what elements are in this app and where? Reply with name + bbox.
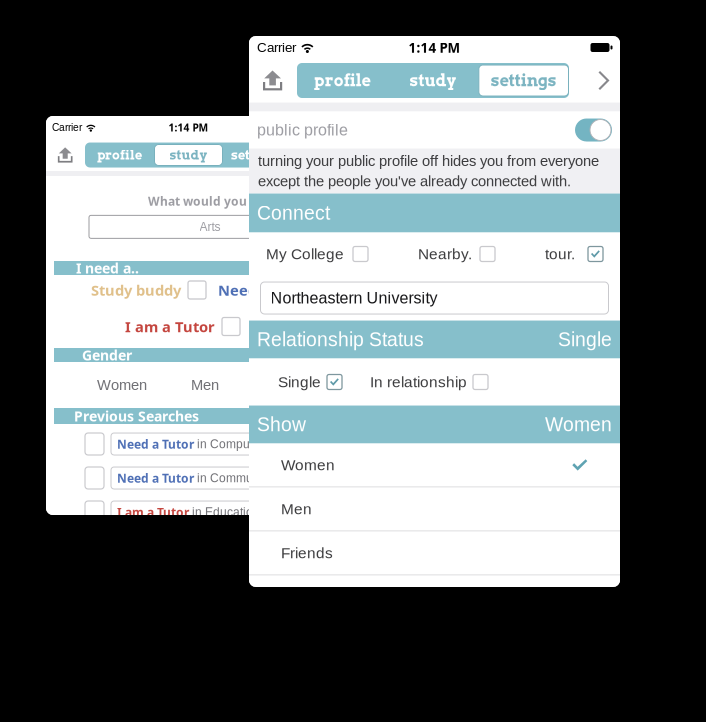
staticText: Need Tut [218, 280, 285, 300]
button[interactable]: I am a Tutor [46, 492, 331, 515]
staticText: 1:14 PM [408, 38, 460, 57]
staticText: profile [314, 71, 371, 90]
staticText: Gender [82, 345, 132, 365]
button[interactable]: Share [249, 58, 297, 102]
staticText: I need a.. [76, 258, 139, 278]
button[interactable]: settings [478, 63, 569, 98]
staticText: I am a Tutor [125, 316, 215, 336]
button[interactable]: profile [85, 142, 154, 167]
button[interactable]: Single [327, 374, 342, 389]
button[interactable]: Next [588, 58, 620, 102]
staticText: public profile [257, 121, 348, 139]
staticText: Northeastern University [270, 289, 437, 307]
button[interactable]: settings [223, 142, 292, 167]
button[interactable]: Men [249, 487, 620, 531]
button[interactable]: Study buddy [188, 281, 206, 299]
staticText: in Education [189, 505, 260, 519]
staticText: Men [281, 500, 312, 517]
staticText: Show [257, 414, 306, 435]
button[interactable]: Share [46, 139, 85, 171]
staticText: Single [278, 373, 321, 390]
button[interactable]: Friends [249, 531, 620, 575]
staticText: Nearby. [418, 245, 472, 262]
staticText: in Computer an [194, 437, 281, 451]
staticText: in Communicat [194, 471, 279, 485]
staticText: settings [231, 147, 284, 163]
button[interactable]: public profile [249, 111, 620, 148]
staticText: turning your public profile off hides yo… [258, 153, 599, 169]
staticText: Women [545, 414, 612, 435]
button[interactable]: My College [353, 246, 368, 261]
staticText: I am a Tutor [117, 504, 189, 520]
staticText: tour. [545, 245, 575, 262]
button[interactable]: Need a Tutor [46, 458, 331, 492]
button[interactable]: profile [297, 63, 388, 98]
button[interactable]: Northeastern University [260, 282, 608, 314]
button[interactable]: study [154, 142, 223, 167]
button[interactable]: In relationship [473, 374, 488, 389]
staticText: Men [191, 377, 219, 393]
staticText: Women [97, 377, 147, 393]
staticText: Relationship Status [257, 329, 424, 350]
staticText: Friends [281, 544, 333, 561]
staticText: Study buddy [91, 280, 181, 300]
button[interactable]: study [388, 63, 478, 98]
button[interactable]: Women [249, 443, 620, 487]
staticText: Need a Tutor [117, 436, 194, 452]
staticText: Carrier [52, 122, 82, 133]
staticText: In relationship [370, 373, 467, 390]
staticText: Connect [257, 202, 330, 224]
staticText: 1:14 PM [168, 121, 208, 134]
staticText: Arts [199, 220, 220, 233]
button[interactable]: I am a Tutor [222, 317, 240, 335]
button[interactable]: Tour [588, 246, 603, 261]
staticText: study [409, 71, 456, 90]
staticText: settings [491, 71, 557, 90]
button[interactable]: Nearby [480, 246, 495, 261]
staticText: except the people you've already connect… [258, 173, 571, 189]
staticText: My College [266, 245, 344, 262]
staticText: Previous Searches [74, 406, 199, 426]
staticText: Single [558, 329, 612, 350]
staticText: What would you like to study? [148, 193, 331, 209]
staticText: Need a Tutor [117, 470, 194, 486]
staticText: Women [281, 456, 335, 473]
staticText: Carrier [257, 40, 296, 55]
staticText: profile [97, 147, 142, 163]
button[interactable]: Need a Tutor [46, 424, 331, 458]
button[interactable]: Arts [89, 215, 331, 238]
staticText: study [169, 147, 207, 163]
